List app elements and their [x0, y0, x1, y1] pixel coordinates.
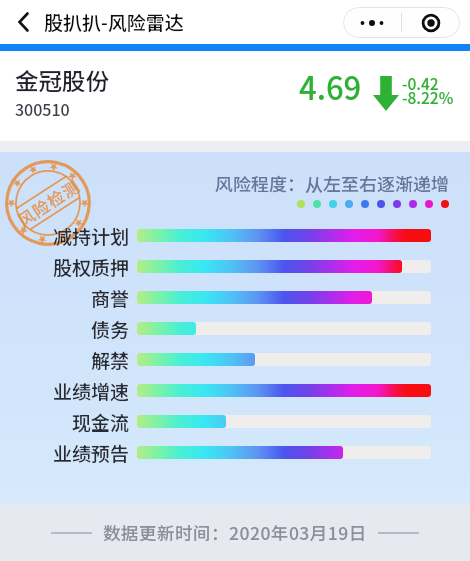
staticText: 减持计划: [53, 222, 130, 250]
staticText: 风险检测: [12, 174, 84, 232]
button[interactable]: 股扒扒-风险雷达: [0, 8, 184, 36]
staticText: 业绩预告: [53, 439, 130, 467]
staticText: 商誉: [91, 284, 130, 312]
staticText: 股扒扒-风险雷达: [44, 8, 184, 36]
button[interactable]: [343, 7, 401, 38]
staticText: 金冠股份: [15, 63, 109, 97]
button[interactable]: [402, 7, 460, 38]
staticText: 现金流: [72, 408, 130, 436]
staticText: 解禁: [91, 346, 130, 374]
staticText: 300510: [15, 97, 70, 120]
staticText: 4.69: [299, 64, 362, 109]
staticText: 股权质押: [53, 253, 130, 281]
staticText: -0.42 -8.22%: [402, 72, 454, 108]
staticText: 风险程度：从左至右逐渐递增: [215, 170, 449, 196]
staticText: 业绩增速: [53, 377, 130, 405]
staticText: 债务: [91, 315, 130, 343]
staticText: 数据更新时间：2020年03月19日: [103, 520, 367, 545]
